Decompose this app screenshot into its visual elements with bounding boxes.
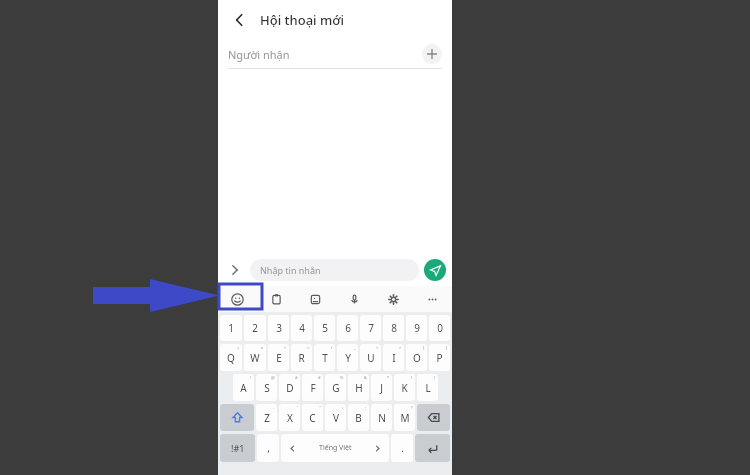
button[interactable]: 5 (314, 315, 335, 341)
button[interactable]: Enter (415, 434, 450, 462)
button[interactable]: * (371, 374, 392, 401)
staticText: 7 (368, 321, 374, 335)
button[interactable]: Send (424, 259, 446, 281)
button[interactable]: 1 (220, 315, 242, 341)
button[interactable]: x (244, 344, 266, 371)
staticText: x (261, 345, 264, 350)
staticText: 1 (228, 321, 234, 335)
button[interactable]: Tiếng Việt (281, 434, 389, 462)
button[interactable]: Voice (335, 286, 374, 312)
staticText: 6 (345, 321, 351, 335)
button[interactable]: Nhập tin nhắn (250, 259, 419, 281)
button[interactable]: Sticker (296, 286, 335, 312)
button[interactable]: ; (348, 404, 369, 431)
button[interactable]: 3 (268, 315, 289, 341)
staticText: Y (345, 351, 351, 365)
button[interactable]: @ (256, 374, 277, 401)
button[interactable]: !#1 (220, 434, 255, 462)
button[interactable]: - (256, 404, 277, 431)
button[interactable]: Settings (374, 286, 413, 312)
button[interactable]: ' (279, 404, 300, 431)
button[interactable]: [ (406, 344, 427, 371)
button[interactable]: / (314, 344, 335, 371)
staticText: / (331, 345, 333, 350)
button[interactable]: ] (429, 344, 450, 371)
button[interactable]: Back (228, 8, 252, 32)
button[interactable]: _ (337, 344, 358, 371)
button[interactable]: 7 (360, 315, 381, 341)
staticText: D (286, 381, 294, 395)
staticText: 5 (322, 321, 328, 335)
staticText: M (400, 411, 410, 425)
staticText: R (298, 351, 305, 365)
staticText: & (364, 375, 367, 380)
button[interactable]: < (360, 344, 381, 371)
staticText: J (380, 381, 383, 395)
button[interactable]: 2 (244, 315, 266, 341)
staticText: ' (297, 405, 298, 410)
button[interactable]: Gallery (257, 286, 296, 312)
button[interactable]: > (383, 344, 404, 371)
staticText: = (307, 345, 310, 350)
staticText: * (387, 375, 390, 380)
staticText: U (367, 351, 375, 365)
staticText: : (342, 405, 344, 410)
staticText: Q (227, 351, 235, 365)
button[interactable]: # (279, 374, 300, 401)
staticText: < (376, 345, 379, 350)
staticText: G (332, 381, 340, 395)
button[interactable]: & (348, 374, 369, 401)
button[interactable]: 9 (406, 315, 427, 341)
button[interactable]: 6 (337, 315, 358, 341)
staticText: W (250, 351, 260, 365)
button[interactable]: ÷ (268, 344, 289, 371)
staticText: S (264, 381, 270, 395)
staticText: L (425, 381, 431, 395)
button[interactable]: Expand (224, 259, 246, 281)
staticText: F (310, 381, 316, 395)
staticText: 3 (276, 321, 282, 335)
staticText: E (276, 351, 282, 365)
button[interactable]: " (302, 404, 323, 431)
staticText: % (340, 375, 344, 380)
staticText: # (295, 375, 298, 380)
button[interactable]: . (391, 434, 413, 462)
button[interactable]: % (325, 374, 346, 401)
button[interactable]: ( (394, 374, 415, 401)
staticText: @ (271, 375, 275, 380)
staticText: Nhập tin nhắn (260, 264, 321, 276)
button[interactable]: Emoji (218, 286, 257, 312)
staticText: K (401, 381, 408, 395)
button[interactable]: + (220, 344, 242, 371)
button[interactable]: More (413, 286, 452, 312)
button[interactable]: , (257, 434, 279, 462)
staticText: ] (446, 345, 448, 350)
staticText: _ (354, 345, 356, 350)
button[interactable]: Backspace (417, 404, 450, 431)
staticText: ÷ (284, 345, 287, 350)
button[interactable]: 8 (383, 315, 404, 341)
button[interactable]: đ (302, 374, 323, 401)
button[interactable]: ? (394, 404, 415, 431)
button[interactable]: ! (233, 374, 254, 401)
staticText: A (240, 381, 247, 395)
staticText: ! (250, 375, 252, 380)
staticText: ( (411, 375, 413, 380)
button[interactable]: 4 (291, 315, 312, 341)
button[interactable]: ) (417, 374, 438, 401)
staticText: 4 (299, 321, 305, 335)
staticText: 9 (414, 321, 420, 335)
button[interactable]: = (291, 344, 312, 371)
staticText: đ (318, 375, 321, 380)
button[interactable]: Add recipient (422, 44, 442, 64)
button[interactable]: : (325, 404, 346, 431)
button[interactable]: , (371, 404, 392, 431)
staticText: Người nhận (228, 47, 290, 62)
staticText: B (355, 411, 362, 425)
staticText: Z (264, 411, 270, 425)
staticText: ? (411, 405, 413, 410)
staticText: - (273, 405, 275, 410)
staticText: T (322, 351, 328, 365)
button[interactable]: Shift (220, 404, 254, 431)
button[interactable]: 0 (429, 315, 450, 341)
